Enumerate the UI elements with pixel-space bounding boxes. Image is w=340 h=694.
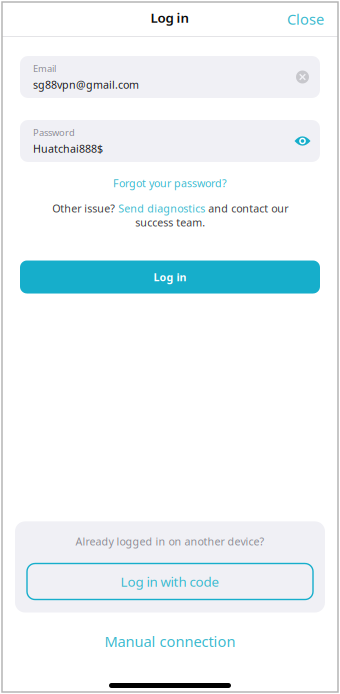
button[interactable]: Manual connection bbox=[104, 626, 235, 656]
button[interactable]: Log in bbox=[20, 260, 320, 293]
staticText: sg88vpn@gmail.com bbox=[33, 78, 139, 92]
staticText: Close bbox=[287, 9, 324, 29]
staticText: Email bbox=[33, 62, 56, 75]
button[interactable]: Log in with code bbox=[27, 563, 313, 599]
button[interactable]: Forgot your password? bbox=[20, 171, 320, 195]
button[interactable]: Clear text bbox=[294, 68, 311, 85]
button[interactable]: Show password bbox=[294, 134, 311, 148]
staticText: Forgot your password? bbox=[113, 176, 227, 190]
staticText: Log in bbox=[153, 270, 186, 284]
staticText: Log in bbox=[150, 9, 189, 26]
staticText: Huatchai888$ bbox=[33, 142, 103, 156]
staticText: Manual connection bbox=[104, 631, 235, 651]
staticText: Log in with code bbox=[120, 573, 219, 590]
staticText: Other issue? Send diagnostics and contac… bbox=[52, 201, 288, 229]
staticText: Password bbox=[33, 126, 75, 139]
staticText: Already logged in on another device? bbox=[75, 534, 264, 549]
button[interactable]: Close bbox=[275, 1, 338, 37]
